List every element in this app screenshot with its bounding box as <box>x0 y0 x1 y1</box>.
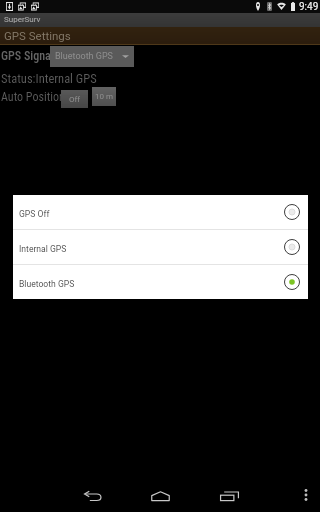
button[interactable]: Bluetooth GPS <box>50 46 134 67</box>
staticText: 10 m <box>95 92 113 101</box>
button[interactable]: More options <box>296 478 316 512</box>
staticText: Off <box>69 95 81 104</box>
button[interactable]: Bluetooth GPS <box>13 265 308 299</box>
staticText: Bluetooth GPS <box>19 279 75 289</box>
button[interactable]: Home <box>138 478 182 512</box>
staticText: GPS Off <box>19 209 50 219</box>
button[interactable]: Internal GPS <box>13 230 308 264</box>
staticText: Status:Internal GPS <box>1 71 97 86</box>
staticText: Auto Position <box>1 90 65 104</box>
staticText: 9:49 <box>299 1 319 13</box>
button[interactable]: Off <box>61 90 88 108</box>
staticText: Bluetooth GPS <box>55 51 113 62</box>
staticText: Internal GPS <box>19 244 67 254</box>
staticText: SuperSurv <box>4 15 41 24</box>
staticText: GPS Signal <box>1 49 54 63</box>
button[interactable]: 10 m <box>92 87 116 106</box>
button[interactable]: Recent apps <box>207 478 251 512</box>
button[interactable]: GPS Off <box>13 195 308 229</box>
button[interactable]: Back <box>70 478 114 512</box>
staticText: GPS Settings <box>4 29 71 42</box>
